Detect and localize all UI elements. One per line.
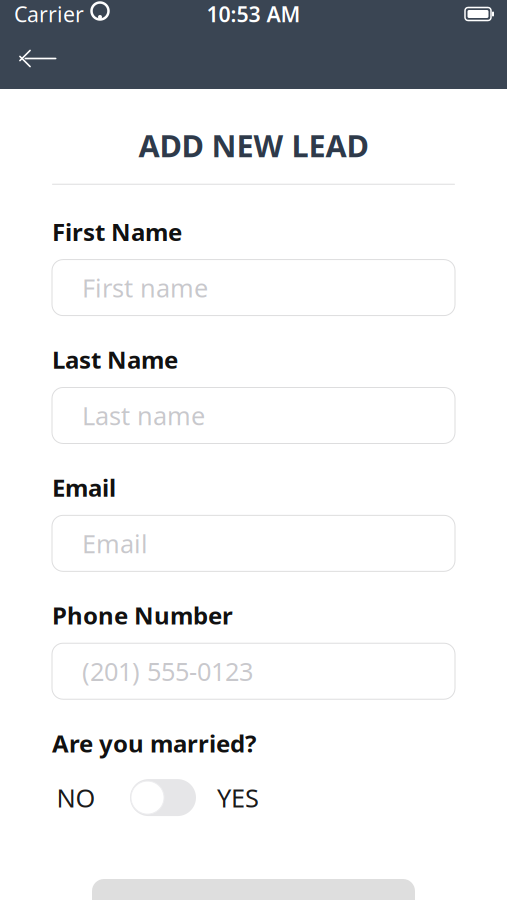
staticText: Last name [82,399,205,432]
staticText: Email [82,526,148,560]
button[interactable]: First name [52,260,455,316]
staticText: First Name [52,216,182,248]
staticText: Are you married? [52,727,256,759]
staticText: (201) 555-0123 [82,654,253,688]
staticText: First name [82,271,208,304]
button[interactable]: Married toggle [130,779,196,816]
staticText: Phone Number [52,599,233,631]
button[interactable] [92,879,415,900]
staticText: 10:53 AM [206,0,300,28]
button[interactable]: (201) 555-0123 [52,643,455,699]
button[interactable]: Last name [52,387,455,443]
button[interactable]: Back [6,28,68,89]
staticText: ADD NEW LEAD [138,125,368,166]
button[interactable]: Email [52,515,455,571]
staticText: Email [52,471,116,503]
staticText: Last Name [52,344,178,375]
staticText: NO [56,781,95,814]
staticText: Carrier [14,0,84,28]
staticText: YES [217,781,259,814]
